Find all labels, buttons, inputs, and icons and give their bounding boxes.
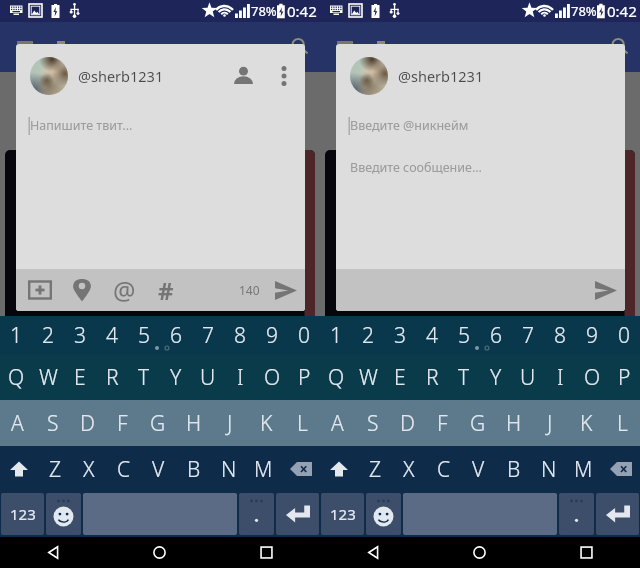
button[interactable]: K [568,400,604,446]
button[interactable]: Emoji [46,493,81,535]
button[interactable]: Recents [533,537,640,568]
button[interactable]: 1 [0,316,32,355]
button[interactable]: I [544,355,576,400]
button[interactable]: M [566,446,601,492]
button[interactable]: N [531,446,566,492]
button[interactable]: W [352,355,384,400]
button[interactable]: 3 [64,316,96,355]
button[interactable]: J [532,400,568,446]
button[interactable]: T [128,355,160,400]
button[interactable]: G [460,400,496,446]
button[interactable]: P [288,355,320,400]
button[interactable]: V [461,446,496,492]
button[interactable]: 4 [416,316,448,355]
button[interactable]: Shift [320,446,358,492]
button[interactable]: D [390,400,425,446]
button[interactable]: Z [358,446,392,492]
button[interactable]: D [70,400,105,446]
button[interactable]: Add photo [22,272,58,308]
button[interactable]: I [224,355,256,400]
button[interactable]: Shift [0,446,38,492]
button[interactable]: Q [0,355,32,400]
button[interactable]: 2 [352,316,384,355]
button[interactable]: 5 [448,316,480,355]
button[interactable]: C [106,446,141,492]
button[interactable]: 6 [480,316,512,355]
button[interactable]: Q [320,355,352,400]
button[interactable]: 8 [544,316,576,355]
button[interactable]: 9 [576,316,608,355]
button[interactable]: G [140,400,176,446]
button[interactable]: K [248,400,284,446]
button[interactable]: P [608,355,640,400]
button[interactable]: 6 [160,316,192,355]
button[interactable]: Period [239,493,274,535]
button[interactable]: B [496,446,531,492]
button[interactable]: 1 [320,316,352,355]
button[interactable]: Back [320,537,426,568]
button[interactable]: B [176,446,211,492]
button[interactable]: Delete [281,446,320,492]
button[interactable]: X [72,446,106,492]
button[interactable]: 0 [608,316,640,355]
button[interactable]: 5 [128,316,160,355]
button[interactable]: Emoji [366,493,401,535]
button[interactable]: S [355,400,390,446]
button[interactable]: N [211,446,246,492]
button[interactable]: 2 [32,316,64,355]
button[interactable]: Account [224,57,262,95]
button[interactable]: Location [64,272,100,308]
button[interactable]: Delete [601,446,640,492]
button[interactable]: J [212,400,248,446]
button[interactable]: More options [265,57,303,95]
button[interactable]: @ [106,272,142,308]
button[interactable]: H [496,400,532,446]
button[interactable]: H [176,400,212,446]
button[interactable]: L [284,400,320,446]
button[interactable]: X [392,446,426,492]
button[interactable]: O [256,355,288,400]
button[interactable]: W [32,355,64,400]
button[interactable]: 0 [288,316,320,355]
button[interactable]: Back [0,537,106,568]
button[interactable]: Z [38,446,72,492]
button[interactable]: Profile photo [350,57,388,95]
button[interactable]: E [64,355,96,400]
button[interactable]: E [384,355,416,400]
button[interactable]: Period [559,493,594,535]
button[interactable]: 123 [1,493,44,535]
button[interactable]: # [148,272,184,308]
button[interactable]: 123 [321,493,364,535]
button[interactable]: A [320,400,355,446]
button[interactable]: O [576,355,608,400]
button[interactable]: 8 [224,316,256,355]
button[interactable]: Send [270,275,302,305]
button[interactable]: L [604,400,640,446]
button[interactable]: C [426,446,461,492]
button[interactable]: F [105,400,140,446]
button[interactable]: 7 [192,316,224,355]
button[interactable]: 4 [96,316,128,355]
button[interactable]: Enter [276,493,319,535]
button[interactable]: F [425,400,460,446]
button[interactable]: 9 [256,316,288,355]
button[interactable]: Profile photo [30,57,68,95]
button[interactable]: 7 [512,316,544,355]
button[interactable]: Y [480,355,512,400]
button[interactable]: U [192,355,224,400]
button[interactable]: Home [426,537,533,568]
button[interactable]: U [512,355,544,400]
button[interactable]: S [35,400,70,446]
button[interactable]: Home [106,537,213,568]
button[interactable]: R [416,355,448,400]
button[interactable]: Enter [596,493,639,535]
button[interactable]: T [448,355,480,400]
button[interactable]: 3 [384,316,416,355]
button[interactable]: Recents [213,537,320,568]
button[interactable]: Y [160,355,192,400]
button[interactable]: R [96,355,128,400]
button[interactable]: M [246,446,281,492]
button[interactable]: V [141,446,176,492]
